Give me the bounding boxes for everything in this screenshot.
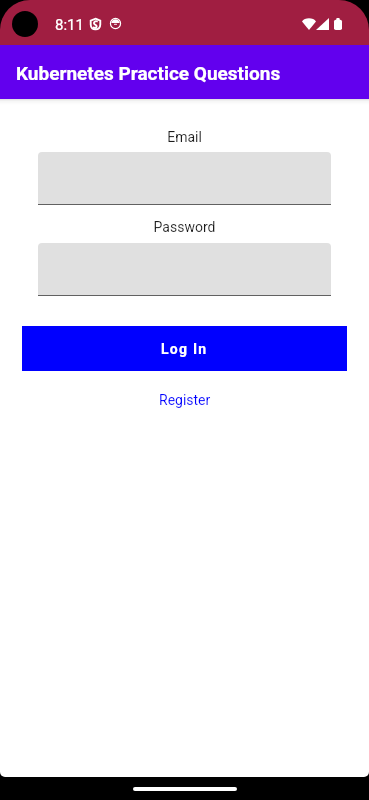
other: Battery	[334, 18, 342, 30]
other: Wi-Fi	[302, 18, 316, 30]
staticText: Log In	[161, 341, 208, 357]
button[interactable]: Email input	[38, 152, 331, 205]
staticText: 8:11	[55, 16, 84, 34]
staticText: Register	[159, 392, 211, 408]
button[interactable]: Register	[151, 389, 219, 411]
other: Notification	[110, 18, 121, 29]
staticText: Kubernetes Practice Questions	[16, 62, 281, 84]
other: Mobile signal	[316, 18, 329, 30]
button[interactable]: Log In	[22, 326, 347, 371]
button[interactable]: Password input	[38, 243, 331, 296]
staticText: Email	[22, 129, 347, 145]
staticText: Password	[22, 219, 347, 235]
other: VPN active	[90, 18, 101, 30]
